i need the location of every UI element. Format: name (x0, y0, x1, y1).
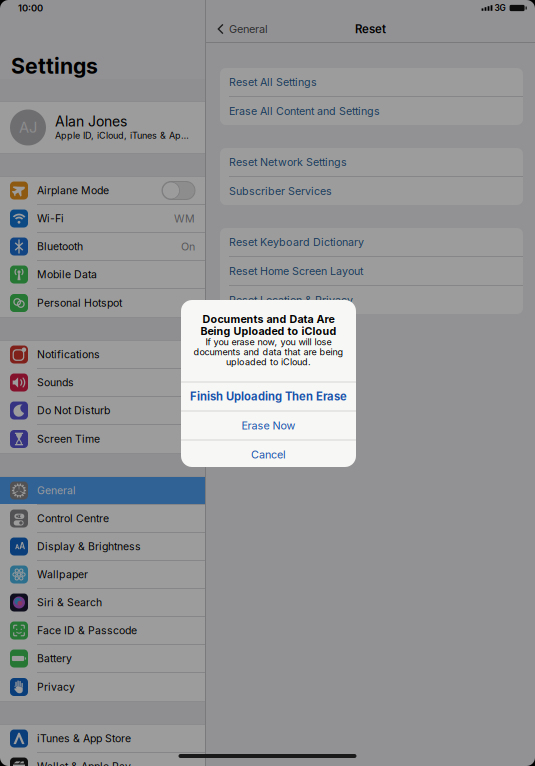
button[interactable]: Privacy (0, 673, 205, 701)
button[interactable]: Reset Location & Privacy (220, 286, 523, 314)
button[interactable]: Subscriber Services (220, 177, 523, 205)
button[interactable]: Battery (0, 645, 205, 672)
staticText: Reset Home Screen Layout (229, 264, 363, 277)
staticText: Face ID & Passcode (37, 624, 137, 637)
button[interactable]: Face ID & Passcode (0, 617, 205, 644)
staticText: Airplane Mode (37, 184, 109, 197)
button[interactable]: General (206, 16, 268, 42)
staticText: uploaded to iCloud. (226, 356, 311, 367)
button[interactable]: Erase All Content and Settings (220, 97, 523, 125)
button[interactable]: Mobile Data (0, 261, 205, 288)
staticText: iTunes & App Store (37, 732, 131, 745)
staticText: 10:00 (18, 2, 43, 14)
button[interactable]: Personal Hotspot (0, 289, 205, 317)
button[interactable]: AJ (0, 102, 205, 153)
staticText: Display & Brightness (37, 540, 141, 553)
button[interactable]: Cancel (181, 440, 356, 468)
button[interactable]: Reset All Settings (220, 68, 523, 96)
staticText: Do Not Disturb (37, 404, 110, 417)
staticText: WM (174, 212, 195, 225)
staticText: Personal Hotspot (37, 297, 122, 309)
button[interactable]: Do Not Disturb (0, 397, 205, 424)
button[interactable]: Airplane Mode (0, 177, 205, 204)
button[interactable]: Notifications (0, 341, 205, 368)
staticText: Wallpaper (37, 568, 88, 581)
staticText: Erase All Content and Settings (229, 104, 380, 117)
staticText: General (37, 484, 76, 497)
button[interactable]: Control Centre (0, 505, 205, 532)
staticText: Erase Now (241, 419, 295, 432)
staticText: On (181, 240, 195, 253)
staticText: documents and data that are being (193, 346, 343, 357)
staticText: Subscriber Services (229, 184, 332, 197)
button[interactable]: iTunes & App Store (0, 725, 205, 752)
button[interactable]: Display & Brightness (0, 533, 205, 560)
staticText: Control Centre (37, 512, 109, 525)
staticText: Wi-Fi (37, 212, 64, 225)
button[interactable]: Reset Network Settings (220, 148, 523, 176)
button[interactable]: Bluetooth (0, 233, 205, 260)
button[interactable]: Wallpaper (0, 561, 205, 588)
staticText: Siri & Search (37, 596, 102, 609)
staticText: Wallet & Apple Pay (37, 760, 131, 766)
staticText: AJ (19, 119, 37, 136)
button[interactable]: Finish Uploading Then Erase (181, 382, 356, 410)
staticText: Being Uploaded to iCloud (200, 324, 336, 337)
staticText: Reset (355, 22, 386, 36)
button[interactable]: Screen Time (0, 425, 205, 453)
staticText: If you erase now, you will lose (205, 336, 331, 347)
button[interactable]: Wi-Fi (0, 205, 205, 232)
staticText: Finish Uploading Then Erase (190, 390, 347, 403)
staticText: Screen Time (37, 433, 100, 445)
staticText: Documents and Data Are (202, 312, 334, 325)
staticText: Bluetooth (37, 240, 83, 253)
button[interactable]: Wallet & Apple Pay (0, 753, 205, 766)
staticText: Sounds (37, 376, 74, 389)
staticText: Notifications (37, 348, 100, 361)
staticText: General (229, 22, 268, 36)
staticText: Apple ID, iCloud, iTunes & App St… (55, 130, 193, 141)
button[interactable]: General (0, 477, 205, 504)
staticText: Mobile Data (37, 268, 97, 281)
staticText: Reset Keyboard Dictionary (229, 235, 364, 248)
button[interactable]: Erase Now (181, 411, 356, 439)
staticText: Privacy (37, 681, 75, 693)
button[interactable]: Siri & Search (0, 589, 205, 616)
button[interactable]: Sounds (0, 369, 205, 396)
button[interactable]: Reset Home Screen Layout (220, 257, 523, 285)
staticText: Reset All Settings (229, 75, 317, 88)
staticText: Alan Jones (55, 113, 127, 130)
staticText: Reset Location & Privacy (229, 293, 353, 306)
staticText: 3G (495, 3, 506, 13)
staticText: Cancel (251, 448, 286, 461)
button[interactable]: Reset Keyboard Dictionary (220, 228, 523, 256)
staticText: Battery (37, 652, 72, 665)
staticText: Settings (11, 53, 98, 79)
staticText: Reset Network Settings (229, 155, 347, 168)
